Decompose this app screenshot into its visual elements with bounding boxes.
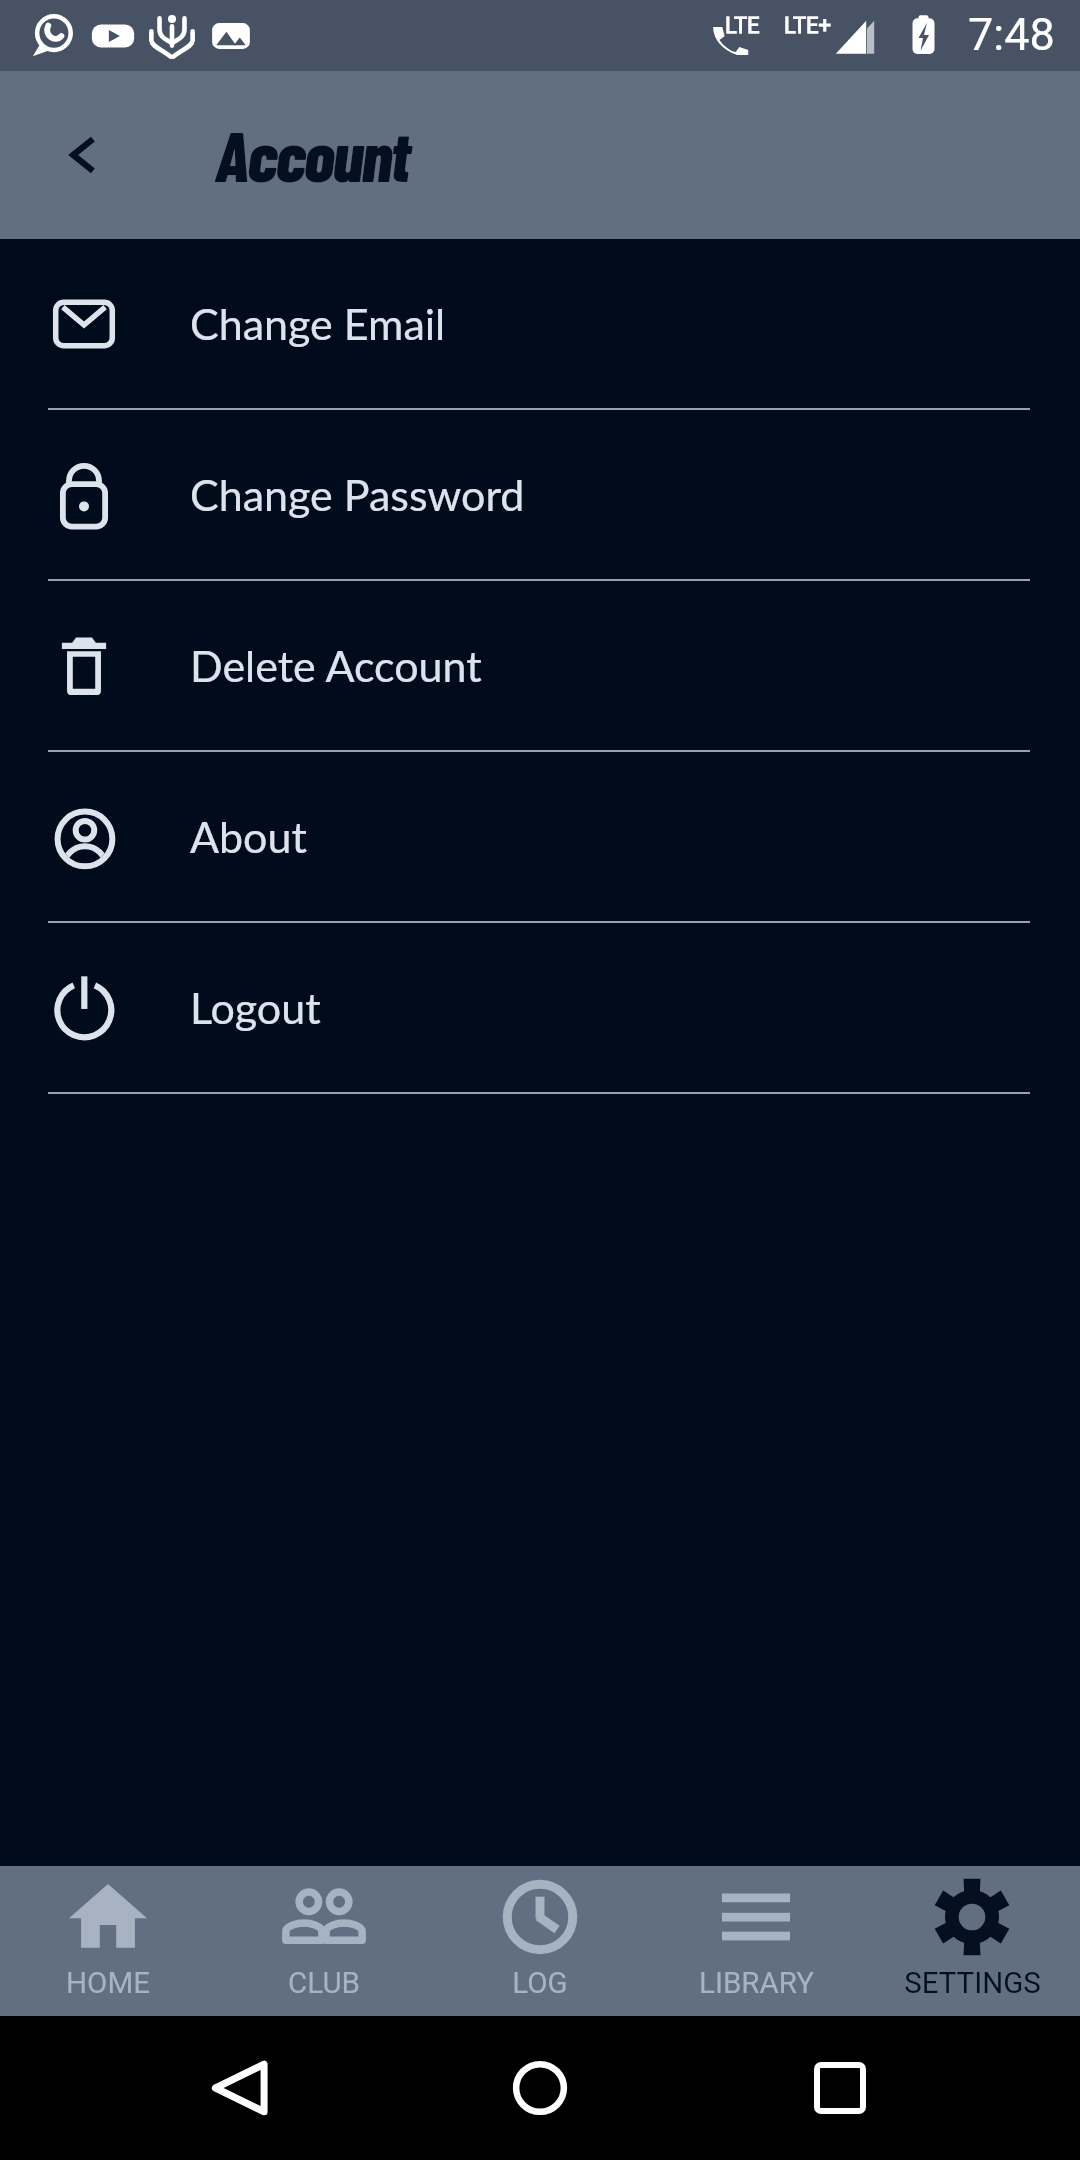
button[interactable]: Logout xyxy=(0,923,1080,1094)
button[interactable]: Delete Account xyxy=(0,581,1080,752)
button[interactable]: CLUB xyxy=(216,1866,432,2016)
staticText: Delete Account xyxy=(190,640,482,692)
staticText: CLUB xyxy=(288,1966,360,2001)
button[interactable]: LIBRARY xyxy=(648,1866,864,2016)
button[interactable]: Home xyxy=(495,2043,585,2133)
staticText: LTE+ xyxy=(784,13,832,39)
staticText: Change Password xyxy=(190,469,525,521)
staticText: About xyxy=(190,811,307,863)
staticText: HOME xyxy=(66,1966,150,2001)
staticText: Change Email xyxy=(190,298,446,350)
staticText: SETTINGS xyxy=(904,1966,1041,2001)
staticText: Account xyxy=(215,112,409,196)
staticText: LTE xyxy=(725,13,760,39)
button[interactable]: Back xyxy=(35,107,131,203)
button[interactable]: LOG xyxy=(432,1866,648,2016)
staticText: Logout xyxy=(190,982,321,1034)
button[interactable]: Change Email xyxy=(0,239,1080,410)
button[interactable]: Recent apps xyxy=(795,2043,885,2133)
button[interactable]: Change Password xyxy=(0,410,1080,581)
staticText: LOG xyxy=(512,1966,568,2001)
button[interactable]: About xyxy=(0,752,1080,923)
button[interactable]: SETTINGS xyxy=(864,1866,1080,2016)
button[interactable]: HOME xyxy=(0,1866,216,2016)
staticText: LIBRARY xyxy=(699,1966,814,2001)
staticText: 7:48 xyxy=(968,8,1055,61)
button[interactable]: Back xyxy=(195,2043,285,2133)
